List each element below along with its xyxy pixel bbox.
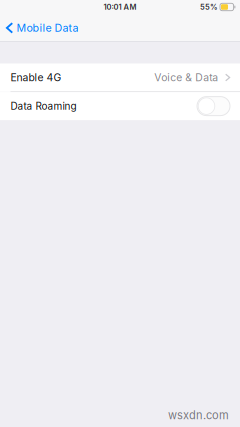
- staticText: Mobile Data: [16, 21, 78, 34]
- button[interactable]: Mobile Data: [0, 14, 84, 41]
- staticText: Enable 4G: [10, 71, 61, 84]
- staticText: Data Roaming: [10, 100, 76, 112]
- button[interactable]: Data Roaming: [197, 97, 230, 116]
- staticText: 10:01 AM: [103, 2, 136, 12]
- staticText: 55%: [200, 2, 218, 12]
- staticText: Voice & Data: [154, 71, 218, 84]
- button[interactable]: Enable 4G: [0, 63, 240, 91]
- staticText: wsxdn.com: [168, 409, 229, 422]
